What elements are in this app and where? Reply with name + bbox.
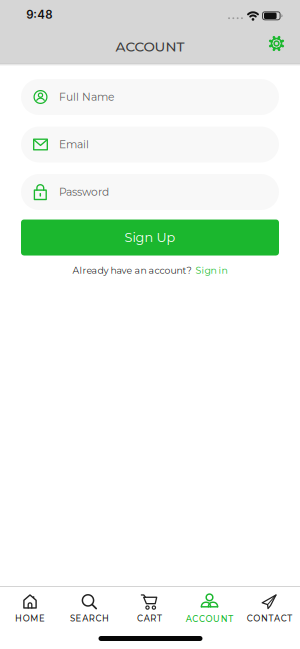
button[interactable]: ACCOUNT [186,593,233,624]
button[interactable]: SEARCH [70,593,109,624]
staticText: HOME [15,613,45,624]
staticText: Already have an account? [72,265,191,276]
button[interactable]: Full Name [21,79,279,115]
staticText: ACCOUNT [186,614,233,624]
staticText: Email [59,138,89,151]
staticText: SEARCH [70,613,109,624]
button[interactable]: Sign Up [21,219,279,255]
staticText: CONTACT [247,613,292,624]
button[interactable]: Email [21,126,279,162]
staticText: ACCOUNT [115,38,184,55]
staticText: Password [59,185,109,198]
staticText: CART [137,613,162,624]
staticText: Full Name [59,90,114,103]
staticText: Sign Up [124,230,175,245]
button[interactable]: Password [21,174,279,210]
button[interactable]: Sign in [195,265,227,276]
staticText: Sign in [195,265,227,276]
button[interactable]: CART [137,593,162,624]
staticText: 9:48 [26,8,52,21]
button[interactable]: HOME [15,593,45,624]
button[interactable]: CONTACT [247,593,292,624]
button[interactable]: Settings [267,34,285,52]
